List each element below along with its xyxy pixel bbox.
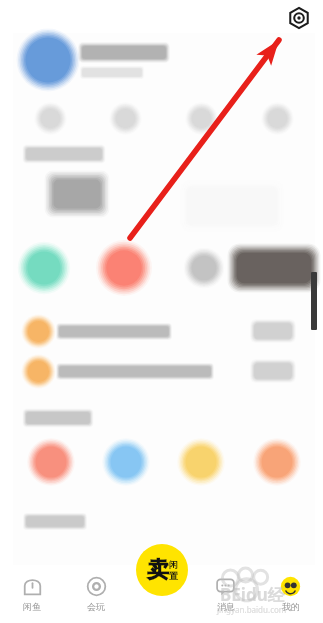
button[interactable] (13, 311, 315, 351)
staticText: BEidu经 (220, 583, 285, 606)
staticText: 置 (169, 570, 178, 581)
button[interactable]: 消息 (193, 565, 258, 623)
button[interactable]: 会玩 (64, 565, 128, 623)
button[interactable] (108, 252, 140, 284)
button[interactable] (13, 33, 315, 95)
button[interactable] (13, 437, 88, 487)
button[interactable] (239, 437, 315, 487)
button[interactable] (163, 95, 239, 141)
button[interactable] (88, 437, 163, 487)
button[interactable] (29, 253, 59, 283)
staticText: 卖 (147, 556, 169, 584)
button[interactable] (163, 437, 239, 487)
button[interactable]: 设置 (287, 6, 311, 30)
staticText: 消息 (217, 601, 235, 612)
staticText: 会玩 (87, 601, 105, 612)
button[interactable] (193, 257, 215, 279)
staticText: 我的 (282, 601, 300, 612)
button[interactable] (13, 95, 88, 141)
button[interactable]: 卖闲置 (136, 544, 188, 596)
button[interactable] (239, 95, 315, 141)
button[interactable] (88, 95, 163, 141)
button[interactable] (13, 351, 315, 391)
button[interactable]: 我的 (258, 565, 323, 623)
button[interactable]: 闲鱼 (0, 565, 64, 623)
staticText: jingyan.baidu.com (217, 604, 287, 615)
staticText: 闲 (169, 559, 178, 570)
staticText: 闲鱼 (23, 601, 41, 612)
